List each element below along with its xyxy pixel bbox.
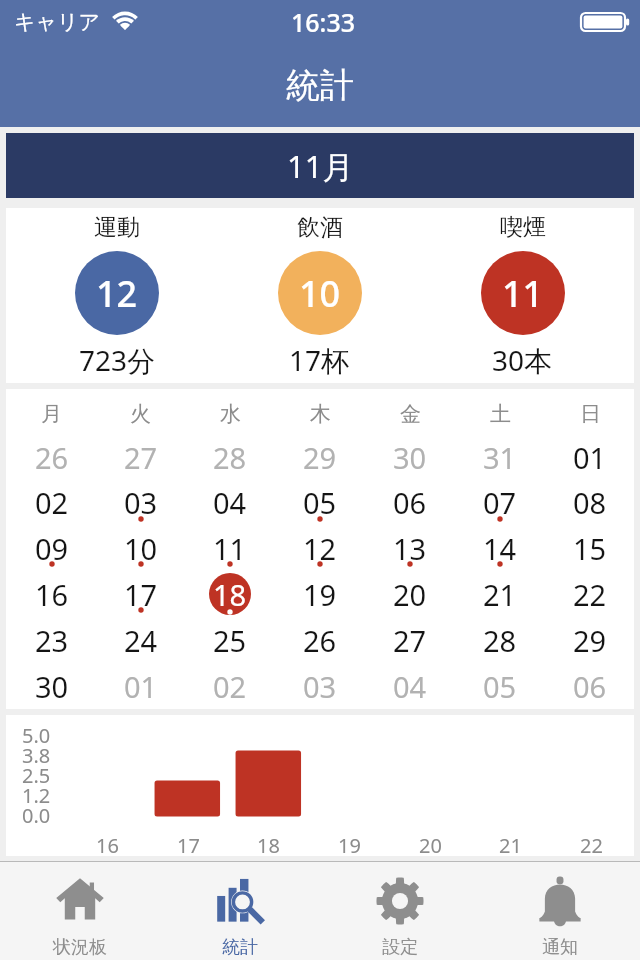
staticText: 02 bbox=[213, 667, 247, 706]
staticText: 22 bbox=[580, 832, 603, 859]
button[interactable]: 26 bbox=[6, 435, 95, 480]
staticText: 17 bbox=[177, 832, 200, 859]
button[interactable]: 喫煙 bbox=[421, 213, 624, 379]
button[interactable]: Settings bbox=[320, 862, 480, 960]
staticText: 21 bbox=[483, 575, 517, 614]
staticText: 23 bbox=[35, 621, 69, 660]
button[interactable]: 07 bbox=[454, 480, 544, 525]
button[interactable]: 飲酒 bbox=[218, 213, 421, 379]
button[interactable]: 16 bbox=[6, 571, 95, 617]
staticText: 16:33 bbox=[291, 5, 356, 39]
staticText: 20 bbox=[419, 832, 442, 859]
button[interactable]: 27 bbox=[364, 617, 454, 663]
button[interactable]: Dashboard bbox=[0, 862, 160, 960]
button[interactable]: 20 bbox=[364, 571, 454, 617]
staticText: 10 bbox=[299, 269, 341, 318]
button[interactable]: 17 bbox=[95, 571, 184, 617]
staticText: 723分 bbox=[79, 341, 156, 379]
staticText: 12 bbox=[303, 529, 337, 568]
staticText: 11 bbox=[213, 529, 247, 568]
staticText: 27 bbox=[124, 438, 158, 477]
staticText: 26 bbox=[35, 438, 69, 477]
button[interactable]: 運動 bbox=[16, 213, 218, 379]
button[interactable]: 23 bbox=[6, 617, 95, 663]
staticText: 状況板 bbox=[53, 936, 107, 959]
staticText: 15 bbox=[573, 529, 607, 568]
staticText: 04 bbox=[393, 667, 427, 706]
button[interactable]: 22 bbox=[544, 571, 634, 617]
button[interactable]: 09 bbox=[6, 525, 95, 571]
staticText: 28 bbox=[213, 438, 247, 477]
button[interactable]: 01 bbox=[544, 435, 634, 480]
staticText: 09 bbox=[35, 529, 69, 568]
staticText: 24 bbox=[124, 621, 158, 660]
button[interactable]: 26 bbox=[274, 617, 364, 663]
staticText: 31 bbox=[483, 438, 517, 477]
button[interactable]: 30 bbox=[364, 435, 454, 480]
staticText: 運動 bbox=[94, 213, 140, 242]
button[interactable]: 15 bbox=[544, 525, 634, 571]
staticText: 17 bbox=[124, 575, 158, 614]
button[interactable]: 11月 bbox=[6, 133, 634, 198]
staticText: 統計 bbox=[222, 936, 258, 959]
staticText: 2.5 bbox=[22, 762, 51, 789]
staticText: 10 bbox=[124, 529, 158, 568]
staticText: 16 bbox=[35, 575, 69, 614]
staticText: 29 bbox=[573, 621, 607, 660]
button[interactable]: 31 bbox=[454, 435, 544, 480]
button[interactable]: Statistics bbox=[160, 862, 320, 960]
staticText: 月 bbox=[41, 401, 62, 427]
staticText: 06 bbox=[573, 667, 607, 706]
button[interactable]: 03 bbox=[95, 480, 184, 525]
staticText: 03 bbox=[303, 667, 337, 706]
button[interactable]: 30 bbox=[6, 663, 95, 709]
button[interactable]: 04 bbox=[184, 480, 274, 525]
button[interactable]: 25 bbox=[184, 617, 274, 663]
button[interactable]: 13 bbox=[364, 525, 454, 571]
button[interactable]: 28 bbox=[454, 617, 544, 663]
button[interactable]: 11 bbox=[184, 525, 274, 571]
button[interactable]: 06 bbox=[544, 663, 634, 709]
button[interactable]: 27 bbox=[95, 435, 184, 480]
staticText: 13 bbox=[393, 529, 427, 568]
button[interactable]: 19 bbox=[274, 571, 364, 617]
button[interactable]: 29 bbox=[274, 435, 364, 480]
button[interactable]: 29 bbox=[544, 617, 634, 663]
button[interactable]: 05 bbox=[274, 480, 364, 525]
staticText: 木 bbox=[310, 401, 331, 427]
staticText: 07 bbox=[483, 483, 517, 522]
staticText: 統計 bbox=[286, 64, 354, 107]
staticText: 22 bbox=[573, 575, 607, 614]
button[interactable]: 12 bbox=[274, 525, 364, 571]
button[interactable]: 18 bbox=[184, 571, 274, 617]
staticText: 1.2 bbox=[22, 782, 51, 809]
button[interactable]: 21 bbox=[454, 571, 544, 617]
staticText: 水 bbox=[220, 401, 241, 427]
staticText: 30 bbox=[393, 438, 427, 477]
staticText: 19 bbox=[338, 832, 361, 859]
button[interactable]: 03 bbox=[274, 663, 364, 709]
staticText: 土 bbox=[490, 401, 511, 427]
button[interactable]: 14 bbox=[454, 525, 544, 571]
staticText: 08 bbox=[573, 483, 607, 522]
button[interactable]: 01 bbox=[95, 663, 184, 709]
button[interactable]: 24 bbox=[95, 617, 184, 663]
button[interactable]: 05 bbox=[454, 663, 544, 709]
button[interactable]: 04 bbox=[364, 663, 454, 709]
button[interactable]: 08 bbox=[544, 480, 634, 525]
staticText: 11月 bbox=[287, 145, 354, 187]
button[interactable]: 02 bbox=[6, 480, 95, 525]
staticText: 06 bbox=[393, 483, 427, 522]
button[interactable]: 02 bbox=[184, 663, 274, 709]
staticText: 03 bbox=[124, 483, 158, 522]
button[interactable]: 28 bbox=[184, 435, 274, 480]
staticText: 設定 bbox=[382, 936, 418, 959]
staticText: 火 bbox=[130, 401, 151, 427]
staticText: キャリア bbox=[14, 9, 100, 35]
staticText: 27 bbox=[393, 621, 427, 660]
staticText: 20 bbox=[393, 575, 427, 614]
button[interactable]: Notifications bbox=[480, 862, 640, 960]
staticText: 01 bbox=[573, 438, 607, 477]
button[interactable]: 10 bbox=[95, 525, 184, 571]
button[interactable]: 06 bbox=[364, 480, 454, 525]
